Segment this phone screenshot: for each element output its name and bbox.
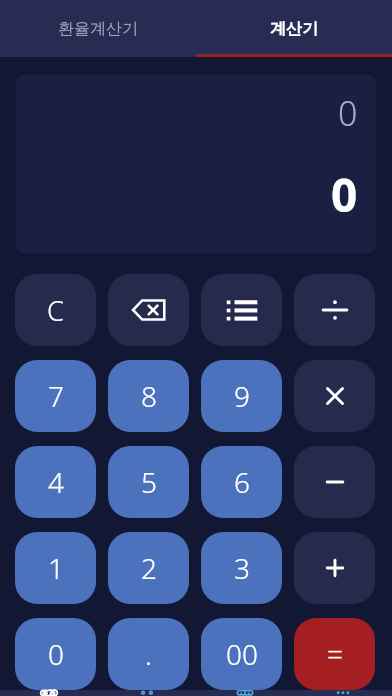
staticText: 5 [141, 463, 157, 501]
staticText: 7 [48, 377, 64, 415]
button[interactable]: . [108, 618, 189, 690]
staticText: 8 [141, 377, 157, 415]
button[interactable]: 4 [15, 446, 96, 518]
button[interactable]: 환율계산기 [0, 0, 196, 57]
button[interactable]: Minus [294, 446, 375, 518]
button[interactable]: 5 [108, 446, 189, 518]
staticText: . [145, 635, 152, 673]
button[interactable]: 7 [15, 360, 96, 432]
staticText: 0 [48, 635, 64, 673]
staticText: 2 [141, 549, 157, 587]
button[interactable]: 더보기 [294, 690, 392, 696]
button[interactable]: 투자데이터 [196, 690, 294, 696]
staticText: 4 [48, 463, 64, 501]
staticText: 00 [226, 635, 258, 673]
staticText: 0 [331, 163, 358, 226]
button[interactable]: 계산기 [0, 690, 98, 696]
button[interactable]: 환율 [98, 690, 196, 696]
button[interactable]: C [15, 274, 96, 346]
button[interactable]: Multiply [294, 360, 375, 432]
staticText: 9 [234, 377, 250, 415]
staticText: 계산기 [270, 19, 318, 39]
button[interactable]: 0 [15, 618, 96, 690]
button[interactable]: 8 [108, 360, 189, 432]
staticText: 환율계산기 [58, 19, 138, 39]
staticText: 6 [234, 463, 250, 501]
staticText: 3 [234, 549, 250, 587]
staticText: = [327, 635, 343, 673]
button[interactable]: History [201, 274, 282, 346]
button[interactable]: = [294, 618, 375, 690]
staticText: C [47, 292, 64, 329]
button[interactable]: 6 [201, 446, 282, 518]
button[interactable]: 9 [201, 360, 282, 432]
button[interactable]: 00 [201, 618, 282, 690]
button[interactable]: 1 [15, 532, 96, 604]
button[interactable]: Plus [294, 532, 375, 604]
button[interactable]: 3 [201, 532, 282, 604]
staticText: 0 [338, 90, 358, 136]
button[interactable]: Divide [294, 274, 375, 346]
button[interactable]: 2 [108, 532, 189, 604]
button[interactable]: 계산기 [196, 0, 392, 57]
staticText: 1 [48, 549, 64, 587]
button[interactable]: Backspace [108, 274, 189, 346]
